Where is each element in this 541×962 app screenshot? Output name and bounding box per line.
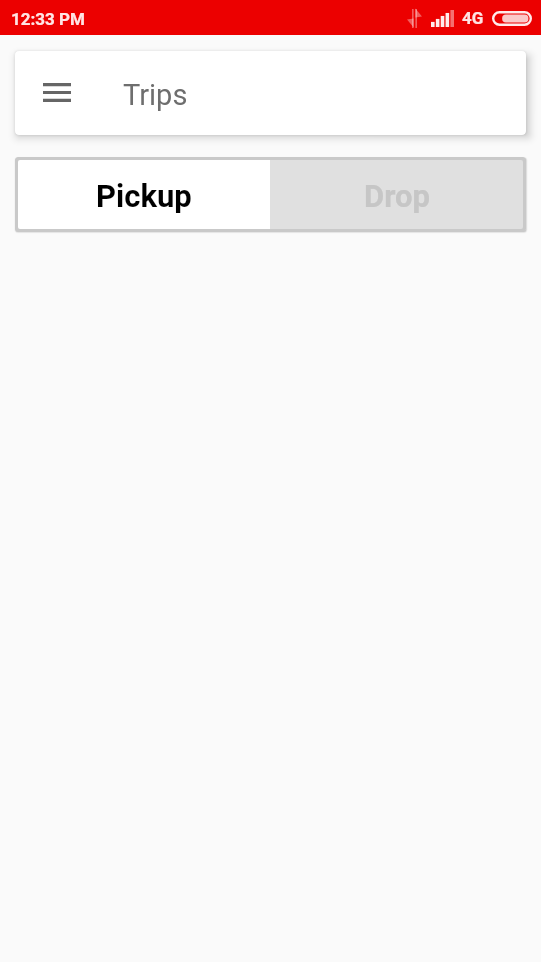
button[interactable]: Drop [270,160,523,229]
other: Mobile signal strength [431,10,454,27]
staticText: 12:33 PM [11,9,85,29]
staticText: Trips [123,78,188,112]
staticText: Pickup [96,178,192,214]
button[interactable]: Open navigation menu [29,65,85,121]
staticText: 4G [462,8,484,28]
staticText: Drop [364,178,430,214]
button[interactable]: Pickup [18,160,270,229]
other: Mobile data activity [406,8,423,28]
other: Battery level [492,11,532,26]
